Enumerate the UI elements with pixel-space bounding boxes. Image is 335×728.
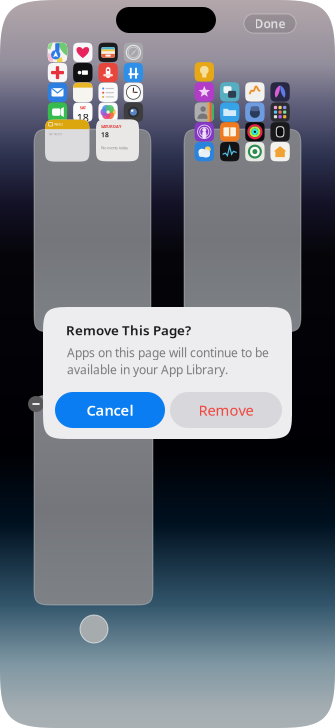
staticText: 18 [77,110,89,125]
staticText: Remove This Page? [66,321,191,339]
button[interactable]: Cancel [55,392,165,428]
staticText: Remove [198,400,253,420]
staticText: available in your App Library. [67,361,228,377]
staticText: Done [254,15,285,31]
staticText: Notes [54,123,62,126]
staticText: Cancel [86,400,133,420]
staticText: No Notes [49,132,62,136]
button[interactable]: Remove page [28,396,44,412]
staticText: 18 [101,130,109,139]
staticText: No events today [101,145,128,150]
staticText: SAT [80,105,86,110]
button[interactable]: Remove [170,392,282,428]
staticText: SATURDAY [101,124,122,129]
staticText: Apps on this page will continue to be [67,344,269,360]
button[interactable]: Done [244,14,296,33]
